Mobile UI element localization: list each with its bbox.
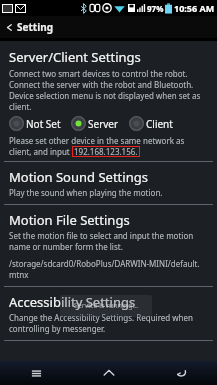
button[interactable]: Motion Sound Settings <box>0 162 217 204</box>
button[interactable]: Not Set <box>9 116 61 131</box>
staticText: Change the Accessibility Settings. Requi… <box>9 312 193 323</box>
staticText: Play the sound when playing the motion. <box>9 187 163 198</box>
staticText: Accessibility Settings <box>9 293 136 311</box>
staticText: name or number form the list. <box>9 241 123 252</box>
staticText: Client <box>146 117 173 131</box>
button[interactable]: Motion File Settings <box>0 205 217 286</box>
button[interactable]: Server/Client Settings <box>0 41 217 161</box>
staticText: Motion Sound Settings <box>9 168 148 186</box>
staticText: Please set other device in the same netw… <box>9 135 185 146</box>
staticText: mtnx <box>9 269 29 280</box>
button[interactable]: Menu <box>0 361 73 385</box>
staticText: Device selection menu is not displayed w… <box>9 90 201 101</box>
staticText: client, and input <box>9 146 72 157</box>
staticText: Setting <box>17 20 53 34</box>
button[interactable]: Server <box>71 116 119 131</box>
button[interactable]: Accessibility Settings <box>0 287 217 340</box>
staticText: 192.168.123.156. <box>74 146 138 157</box>
staticText: Connect the server with the robot and Bl… <box>9 79 194 90</box>
staticText: Set the motion file to select and input … <box>9 230 194 241</box>
staticText: Not Set <box>26 117 61 131</box>
button[interactable]: Home <box>73 361 145 385</box>
staticText: Server/Client Settings <box>9 48 141 66</box>
staticText: Motion File Settings <box>9 211 130 229</box>
staticText: client. <box>9 101 32 112</box>
button[interactable]: Client <box>129 116 173 131</box>
staticText: controlling by messenger. <box>9 323 106 334</box>
staticText: 10:56 AM <box>174 2 215 14</box>
staticText: Service is running... <box>74 301 139 311</box>
staticText: Server <box>88 117 119 131</box>
staticText: /storage/sdcard0/RoboPlus/DARWIN-MINI/de… <box>9 258 200 269</box>
other: Back <box>6 24 13 31</box>
staticText: Connect two smart devices to control the… <box>9 68 188 79</box>
button[interactable]: Back <box>0 16 217 38</box>
button[interactable]: Back <box>145 361 217 385</box>
staticText: 97% <box>147 3 164 14</box>
